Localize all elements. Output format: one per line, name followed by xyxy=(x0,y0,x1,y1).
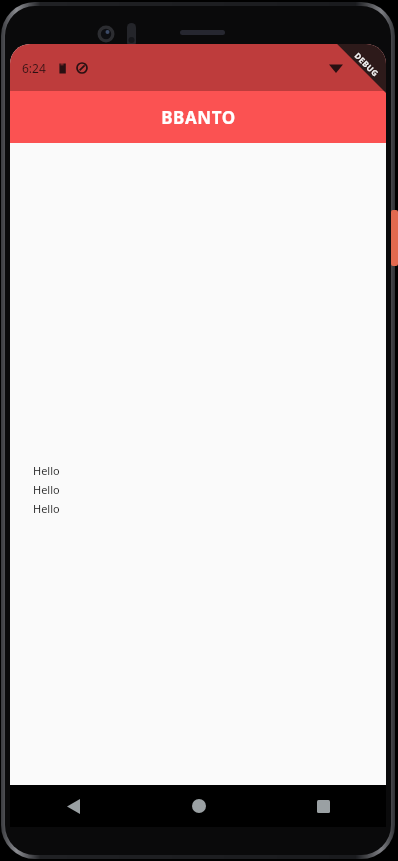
button[interactable]: Recent apps xyxy=(261,785,386,827)
button[interactable]: Back xyxy=(10,785,136,827)
other: Power button xyxy=(391,210,398,266)
staticText: Hello xyxy=(33,463,60,478)
staticText: DEBUG xyxy=(352,50,381,79)
button[interactable]: Home xyxy=(136,785,261,827)
staticText: Hello xyxy=(33,501,60,516)
staticText: BBANTO xyxy=(161,106,236,129)
staticText: Hello xyxy=(33,482,60,497)
staticText: 6:24 xyxy=(22,60,46,76)
